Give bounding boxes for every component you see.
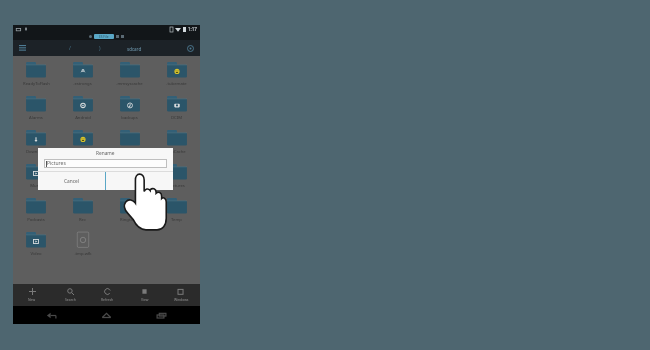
button[interactable]: Android	[59, 93, 106, 127]
staticText: .mmsyscache	[116, 81, 143, 87]
button[interactable]: Kik	[59, 127, 106, 161]
staticText: Pictures	[169, 183, 185, 189]
button[interactable]: Menu	[13, 40, 31, 56]
button[interactable]: mpCache	[153, 127, 200, 161]
button[interactable]: .tubemate	[153, 59, 200, 93]
staticText: Android	[75, 115, 91, 121]
staticText: )	[99, 45, 101, 52]
staticText: OK	[136, 178, 143, 185]
staticText: Alarms	[29, 115, 43, 121]
staticText: .tmp.wfk	[74, 251, 92, 257]
button[interactable]: Cancel	[38, 172, 105, 190]
staticText: Podcasts	[27, 217, 45, 223]
button[interactable]: Alarms	[13, 93, 59, 127]
button[interactable]: View	[126, 284, 163, 306]
button[interactable]: Temp	[153, 195, 200, 229]
button[interactable]: Options	[180, 40, 200, 56]
button[interactable]: Podcasts	[13, 195, 59, 229]
staticText: DCIM	[171, 115, 182, 121]
staticText: /	[69, 45, 71, 52]
button[interactable]: DCIM	[153, 93, 200, 127]
staticText: New	[28, 297, 36, 302]
staticText: ES File	[99, 35, 109, 39]
staticText: Cancel	[64, 178, 79, 185]
button[interactable]: ReadyToFlash	[13, 59, 59, 93]
button[interactable]: Photos	[106, 161, 153, 195]
button[interactable]: Pictures	[153, 161, 200, 195]
button[interactable]: .tmp.wfk	[59, 229, 106, 263]
staticText: Refresh	[101, 297, 114, 302]
button[interactable]: backups	[106, 93, 153, 127]
staticText: Music	[30, 183, 42, 189]
button[interactable]: Home	[97, 306, 115, 324]
staticText: Photos	[123, 183, 137, 189]
button[interactable]: OK	[106, 172, 173, 190]
staticText: View	[141, 297, 149, 302]
staticText: .tubemate	[166, 81, 187, 87]
staticText: mpCache	[167, 149, 186, 155]
button[interactable]: .mmsyscache	[106, 59, 153, 93]
button[interactable]: .estrongs	[59, 59, 106, 93]
staticText: backups	[121, 115, 138, 121]
button[interactable]: Download	[13, 127, 59, 161]
staticText: Rec	[79, 217, 86, 223]
button[interactable]: Windows	[163, 284, 200, 306]
button[interactable]: Music	[13, 161, 59, 195]
staticText: Download	[26, 149, 46, 155]
button[interactable]: Video	[13, 229, 59, 263]
staticText: .estrongs	[73, 81, 92, 87]
staticText: Rename	[96, 150, 115, 157]
staticText: Temp	[171, 217, 182, 223]
staticText: Ringtones	[120, 217, 140, 223]
staticText: 1:17	[188, 26, 197, 32]
staticText: Search	[65, 297, 76, 302]
button[interactable]: Search	[51, 284, 89, 306]
button[interactable]: Ringtones	[106, 195, 153, 229]
button[interactable]: Rec	[59, 195, 106, 229]
button[interactable]: New	[13, 284, 51, 306]
staticText: Pictures	[47, 160, 66, 167]
button[interactable]: Movies	[106, 127, 153, 161]
button[interactable]: /	[31, 40, 180, 56]
staticText: Windows	[174, 297, 189, 302]
staticText: sdcard	[127, 46, 142, 52]
button[interactable]: Notif	[59, 161, 106, 195]
button[interactable]: Refresh	[89, 284, 126, 306]
staticText: ReadyToFlash	[23, 81, 50, 87]
button[interactable]: Back	[42, 306, 60, 324]
button[interactable]: Recents	[152, 306, 170, 324]
staticText: Video	[30, 251, 42, 257]
